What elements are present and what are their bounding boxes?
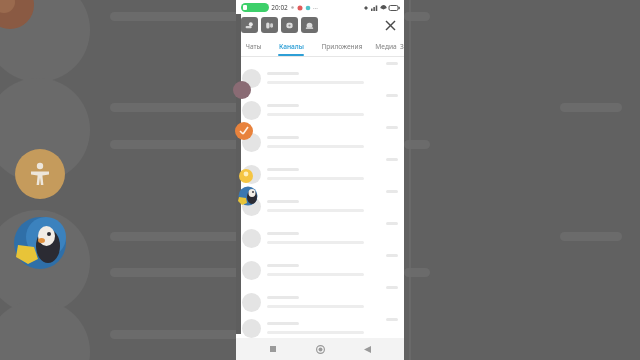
button[interactable]: Close: [382, 17, 398, 33]
button[interactable]: Icon 1: [241, 17, 258, 33]
staticText: Каналы: [279, 42, 304, 51]
staticText: Медиа: [375, 42, 397, 51]
staticText: З: [400, 42, 404, 51]
button[interactable]: [236, 126, 404, 158]
button[interactable]: [236, 254, 404, 286]
staticText: Приложения: [321, 42, 363, 51]
button[interactable]: Icon 4: [301, 17, 318, 33]
button[interactable]: Back: [357, 339, 377, 359]
button[interactable]: Icon 2: [261, 17, 278, 33]
button[interactable]: З: [400, 36, 404, 56]
button[interactable]: [236, 318, 404, 338]
button[interactable]: [236, 62, 404, 94]
staticText: ···: [313, 4, 318, 12]
button[interactable]: [236, 286, 404, 318]
button[interactable]: [236, 222, 404, 254]
button[interactable]: Чаты: [236, 36, 270, 56]
button[interactable]: Icon 3: [281, 17, 298, 33]
button[interactable]: [236, 190, 404, 222]
staticText: Чаты: [245, 42, 262, 51]
button[interactable]: Каналы: [270, 36, 312, 56]
button[interactable]: Приложения: [312, 36, 372, 56]
button[interactable]: Home: [310, 339, 330, 359]
button[interactable]: Recents: [263, 339, 283, 359]
button[interactable]: [236, 94, 404, 126]
button[interactable]: Медиа: [372, 36, 400, 56]
button[interactable]: [236, 158, 404, 190]
staticText: 20:02: [271, 3, 288, 12]
